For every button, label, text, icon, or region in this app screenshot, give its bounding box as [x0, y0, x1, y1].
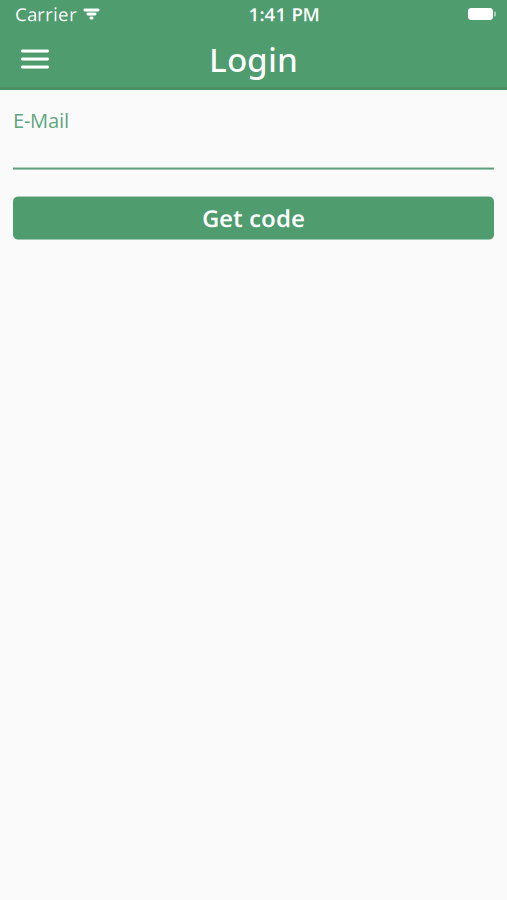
- button[interactable]: Get code: [13, 197, 494, 240]
- staticText: Get code: [202, 202, 305, 234]
- staticText: Login: [209, 37, 298, 81]
- staticText: Carrier: [15, 2, 77, 26]
- button[interactable]: Menu: [12, 36, 58, 82]
- staticText: E-Mail: [13, 107, 69, 134]
- staticText: 1:41 PM: [248, 2, 319, 26]
